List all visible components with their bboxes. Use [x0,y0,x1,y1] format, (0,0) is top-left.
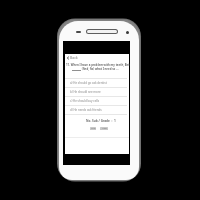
button[interactable]: d) He needs ask friends [65,105,129,114]
button[interactable]: Back [66,55,80,60]
staticText: Back [70,55,78,60]
staticText: No. Sub / Grade : 1 [86,119,116,123]
staticText: Next [102,127,107,130]
staticText: (find, fix) what I need so ... [81,67,119,71]
button[interactable]: b) He should see more [65,87,129,96]
staticText: b) He should see more [70,90,101,94]
staticText: d) He needs ask friends [70,108,102,112]
button[interactable]: Prev [90,127,96,130]
staticText: a) He should go ask dentist [70,81,107,85]
staticText: c) He should buy cells [70,99,100,103]
other: Back [66,56,70,60]
staticText: Prev [91,127,96,130]
button[interactable]: c) He should buy cells [65,96,129,105]
button[interactable]: Next [100,127,108,130]
staticText: 11. When I have a problem with my teeth,… [66,63,130,67]
button[interactable]: a) He should go ask dentist [65,78,129,87]
